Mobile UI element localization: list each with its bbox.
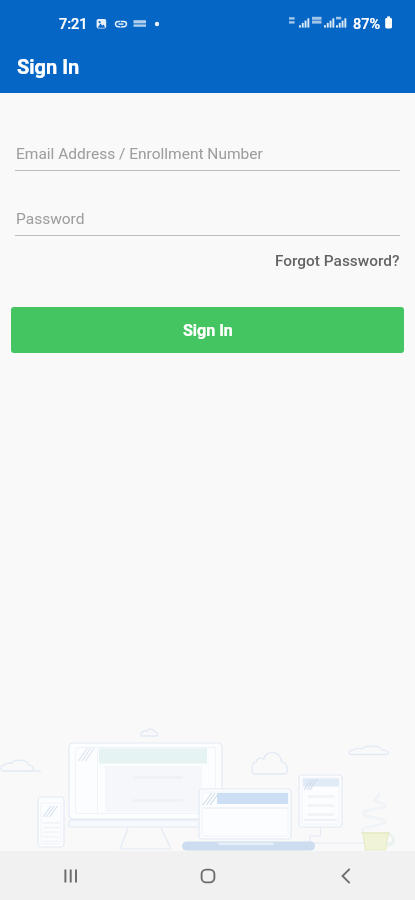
- staticText: 87%: [353, 16, 381, 33]
- staticText: Forgot Password?: [275, 252, 400, 270]
- staticText: Email Address / Enrollment Number: [16, 145, 263, 163]
- button[interactable]: Back: [277, 851, 415, 900]
- button[interactable]: Sign In: [11, 307, 404, 353]
- staticText: 7:21: [59, 16, 88, 33]
- button[interactable]: Recent apps: [0, 851, 139, 900]
- button[interactable]: Forgot Password?: [260, 245, 415, 277]
- staticText: Password: [16, 210, 85, 228]
- staticText: Sign In: [183, 321, 233, 340]
- button[interactable]: Home: [139, 851, 277, 900]
- staticText: Sign In: [17, 55, 80, 78]
